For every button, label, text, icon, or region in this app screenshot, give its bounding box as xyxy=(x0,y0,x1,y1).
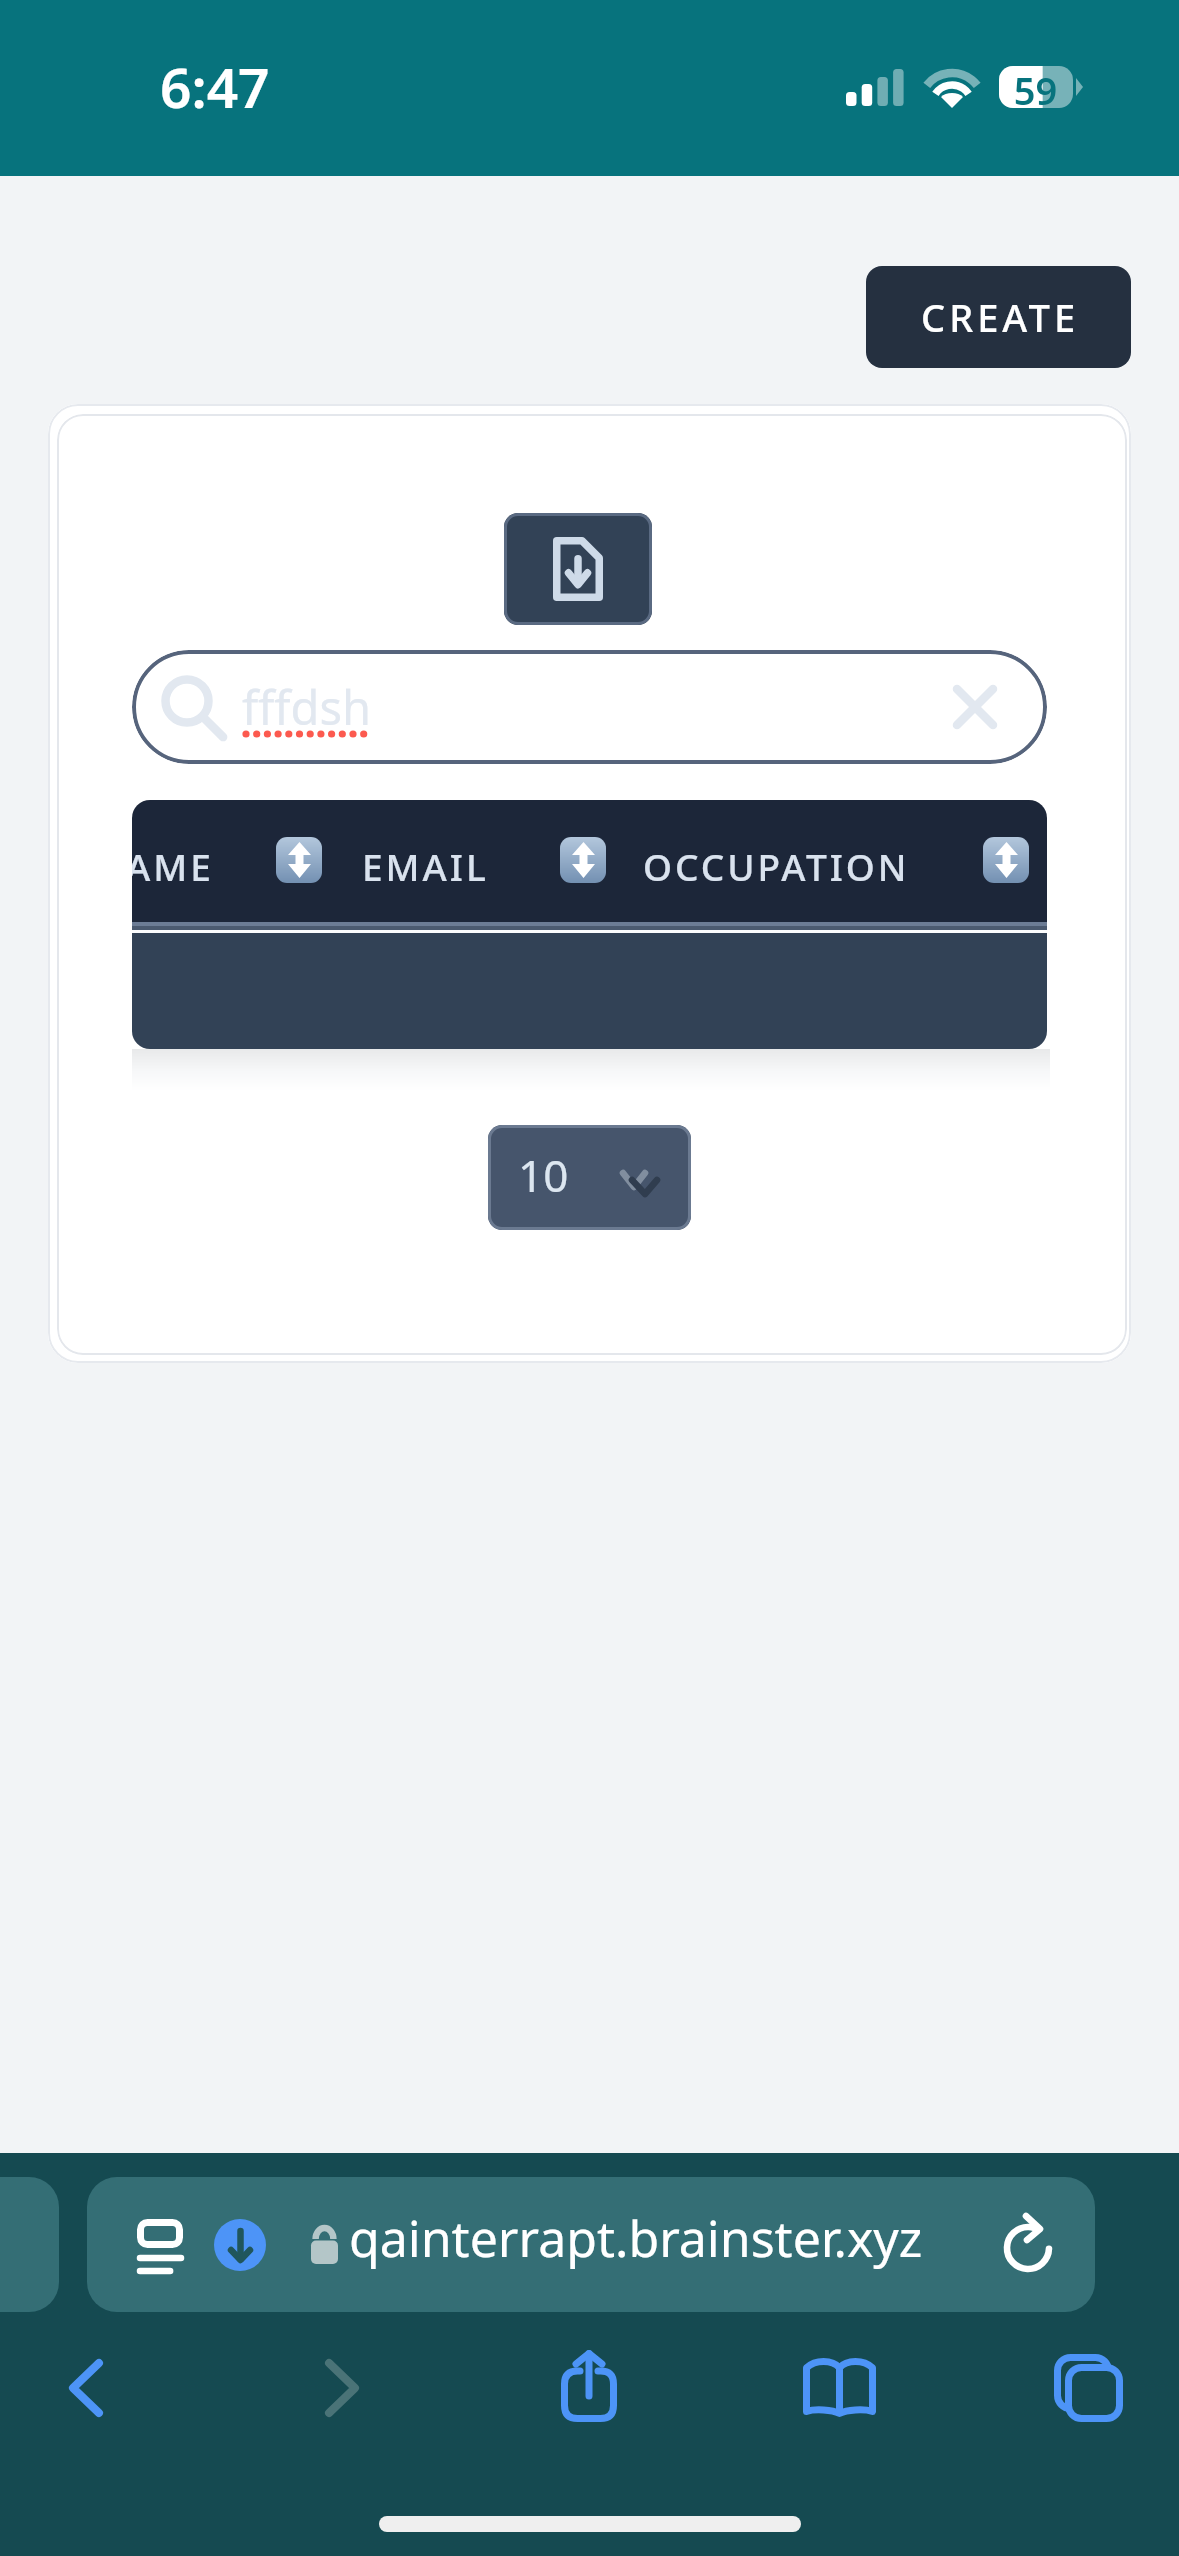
button[interactable]: Forward xyxy=(287,2333,397,2443)
button[interactable]: Bookmarks xyxy=(784,2332,894,2442)
button[interactable]: Page settings xyxy=(87,2177,1095,2312)
staticText: 59 xyxy=(1008,64,1063,116)
button[interactable]: Downloads xyxy=(214,2219,266,2271)
staticText: fffdsh xyxy=(242,675,371,739)
button[interactable]: Sort column xyxy=(560,837,606,883)
staticText: 10 xyxy=(518,1145,569,1205)
staticText: AME xyxy=(132,841,214,891)
staticText: qainterrapt.brainster.xyz xyxy=(349,2204,923,2272)
button[interactable]: Sort column xyxy=(983,837,1029,883)
button[interactable]: Sort column xyxy=(276,837,322,883)
button[interactable]: Clear search xyxy=(932,664,1018,750)
button[interactable]: CREATE xyxy=(866,266,1131,368)
staticText: OCCUPATION xyxy=(643,841,910,891)
button[interactable]: Back xyxy=(31,2333,141,2443)
staticText: EMAIL xyxy=(362,841,489,891)
staticText: 6:47 xyxy=(160,49,270,124)
button[interactable]: Download file xyxy=(504,513,652,625)
button[interactable]: fffdsh xyxy=(132,650,1047,764)
staticText: CREATE xyxy=(921,291,1080,343)
button[interactable]: Share xyxy=(534,2331,644,2441)
button[interactable]: 10 xyxy=(488,1125,691,1230)
button[interactable]: Tabs xyxy=(1033,2333,1143,2443)
button[interactable]: Page settings xyxy=(123,2208,197,2284)
button[interactable]: Reload page xyxy=(993,2206,1063,2278)
